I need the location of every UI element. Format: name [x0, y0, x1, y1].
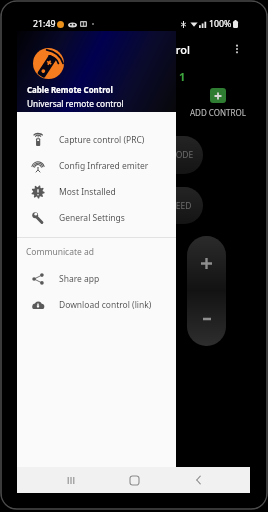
button[interactable]: Most Installed — [17, 179, 176, 205]
staticText: Communicate ad — [26, 246, 95, 258]
staticText: Download control (link) — [59, 299, 152, 311]
staticText: Capture control (PRC) — [59, 134, 145, 146]
staticText: Share app — [59, 273, 100, 285]
button[interactable]: Decrease — [187, 291, 226, 346]
staticText: SPEED — [166, 200, 192, 212]
button[interactable]: Share app — [17, 266, 176, 292]
staticText: Most Installed — [59, 186, 116, 198]
button[interactable]: Capture control (PRC) — [17, 127, 176, 153]
staticText: Cable Remote Control — [27, 85, 113, 96]
button[interactable]: MODE — [147, 136, 203, 174]
staticText: General Settings — [59, 212, 125, 224]
staticText: 1 — [179, 69, 186, 84]
staticText: MODE — [168, 149, 194, 161]
staticText: Universal remote control — [27, 98, 124, 109]
button[interactable]: Increase — [187, 236, 226, 291]
staticText: 21:49 — [33, 18, 56, 30]
button[interactable]: Home — [114, 467, 154, 493]
button[interactable]: General Settings — [17, 205, 176, 231]
staticText: Config Infrared emiter — [59, 160, 149, 172]
button[interactable]: Add control — [210, 88, 226, 103]
button[interactable]: Config Infrared emiter — [17, 153, 176, 179]
staticText: Cable Remote Control — [75, 42, 190, 57]
button[interactable]: Back — [178, 467, 218, 493]
staticText: 100% — [209, 18, 232, 30]
button[interactable]: Download control (link) — [17, 292, 176, 318]
button[interactable]: More options — [226, 38, 248, 60]
button[interactable]: SPEED — [147, 187, 203, 224]
staticText: ADD CONTROL — [190, 107, 246, 118]
button[interactable]: Recents — [51, 467, 91, 493]
